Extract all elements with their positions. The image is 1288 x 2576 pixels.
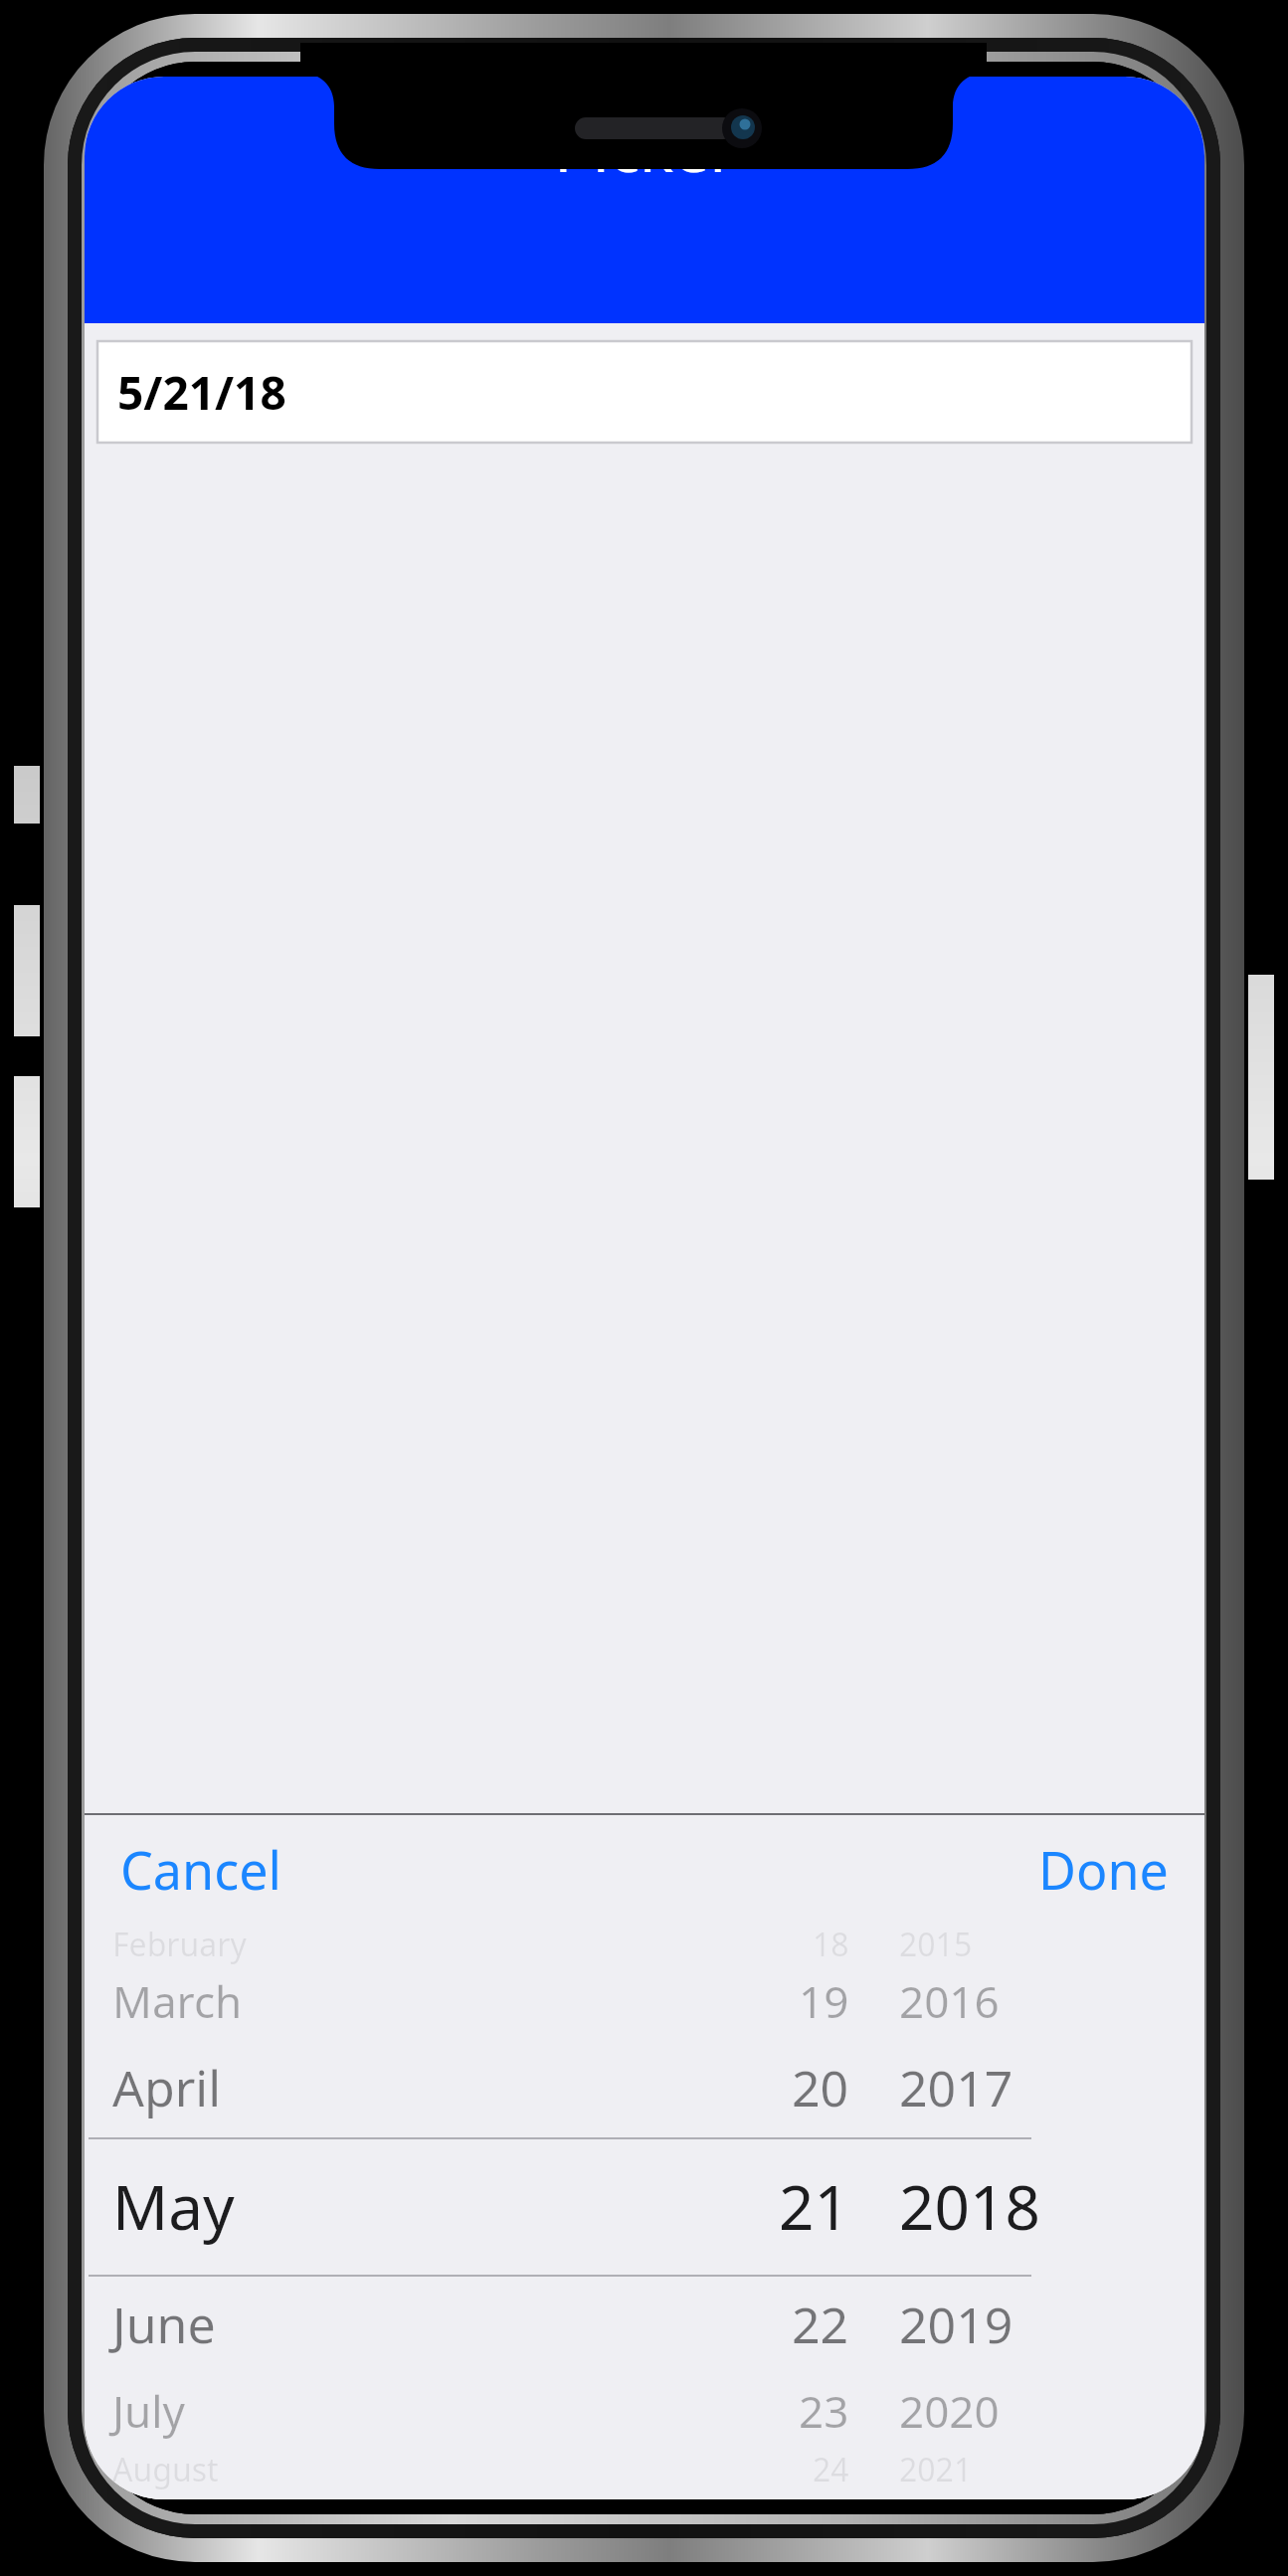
staticText: 2018 — [899, 2164, 1040, 2248]
staticText: 2020 — [899, 2381, 1000, 2441]
staticText: 2015 — [899, 1923, 973, 1964]
staticText: June — [112, 2291, 216, 2358]
staticText: Cancel — [120, 1834, 281, 1905]
staticText: 20 — [792, 2054, 849, 2121]
button[interactable]: February — [85, 1923, 1204, 2499]
staticText: 2017 — [899, 2054, 1013, 2121]
staticText: 24 — [813, 2448, 849, 2489]
staticText: March — [112, 1971, 243, 2031]
staticText: 2016 — [899, 1971, 1000, 2031]
button[interactable]: Done — [966, 1815, 1204, 1923]
staticText: February — [112, 1923, 247, 1964]
staticText: July — [112, 2381, 185, 2441]
staticText: May — [112, 2164, 235, 2248]
staticText: 2021 — [899, 2448, 973, 2489]
staticText: August — [112, 2448, 219, 2489]
staticText: 18 — [813, 1923, 849, 1964]
staticText: Done — [1038, 1834, 1169, 1905]
staticText: 5/21/18 — [117, 361, 286, 424]
staticText: Picker — [554, 104, 736, 191]
staticText: 23 — [799, 2381, 849, 2441]
staticText: 2019 — [899, 2291, 1013, 2358]
staticText: 22 — [792, 2291, 849, 2358]
staticText: 21 — [779, 2164, 849, 2248]
button[interactable]: Cancel — [85, 1815, 363, 1923]
staticText: April — [112, 2054, 222, 2121]
staticText: 19 — [799, 1971, 849, 2031]
button[interactable]: 5/21/18 — [97, 341, 1192, 443]
